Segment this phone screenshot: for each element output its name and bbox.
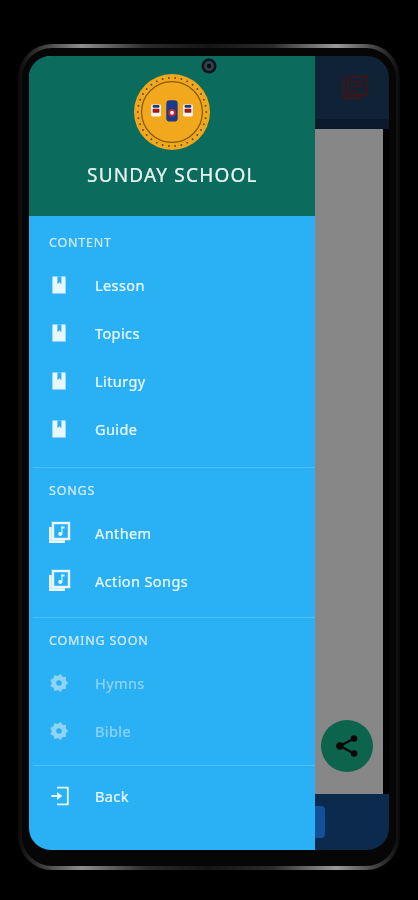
staticText: Lesson: [95, 275, 145, 295]
button[interactable]: Share: [321, 720, 373, 772]
button[interactable]: Install Now: [29, 794, 389, 850]
staticText: SUNDAY SCHOOL: [87, 162, 258, 188]
staticText: we have learnt that: [158, 457, 260, 472]
button[interactable]: Lesson: [29, 261, 315, 309]
staticText: Action Songs: [95, 571, 189, 591]
staticText: COMING SOON: [49, 632, 149, 649]
staticText: Hymns: [95, 673, 145, 693]
button[interactable]: Liturgy: [29, 357, 315, 405]
button[interactable]: Anthem: [29, 509, 315, 557]
staticText: Liturgy: [95, 371, 146, 391]
button[interactable]: Hymns: [29, 659, 315, 707]
staticText: Bible: [95, 721, 132, 741]
button[interactable]: Library: [335, 68, 375, 108]
staticText: Guide: [95, 419, 138, 439]
button[interactable]: Topics: [29, 309, 315, 357]
button[interactable]: Guide: [29, 405, 315, 453]
staticText: Topics: [95, 323, 140, 343]
staticText: SONGS: [49, 482, 96, 499]
staticText: MEMORY VERSE : TEACH: [143, 180, 276, 195]
button[interactable]: Bible: [29, 707, 315, 755]
staticText: FELLOWSHIP WITH GOD: [143, 143, 276, 158]
staticText: CONTENT: [49, 234, 112, 251]
button[interactable]: Action Songs: [29, 557, 315, 605]
button[interactable]: Back: [29, 772, 315, 820]
staticText: Back: [95, 786, 129, 806]
staticText: Anthem: [95, 523, 152, 543]
